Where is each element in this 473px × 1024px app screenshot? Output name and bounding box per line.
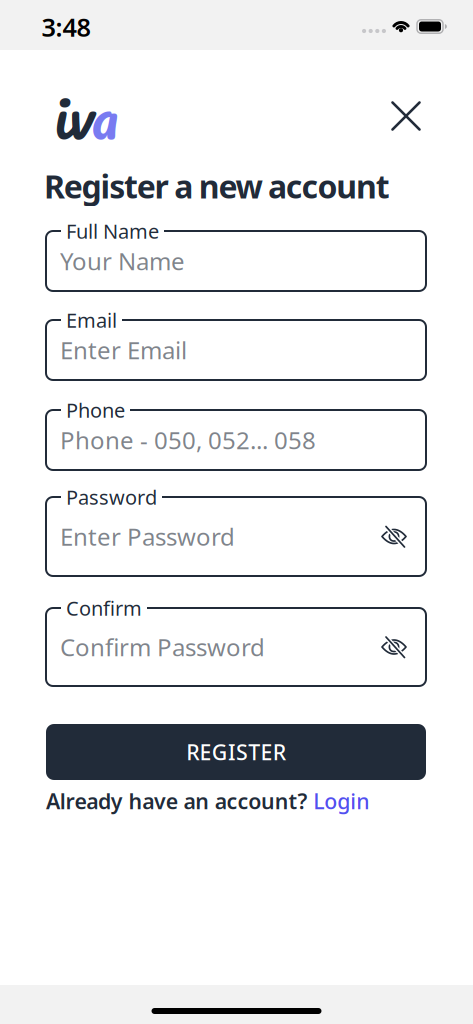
staticText: Confirm (66, 595, 142, 621)
staticText: Already have an account? (46, 787, 313, 815)
staticText: Register a new account (44, 165, 390, 207)
staticText: Full Name (66, 218, 159, 244)
button[interactable]: Login (313, 787, 369, 815)
staticText: REGISTER (186, 738, 286, 766)
staticText: Password (66, 484, 157, 510)
staticText: Enter Password (60, 521, 235, 552)
staticText: Enter Email (60, 334, 187, 366)
staticText: Phone - 050, 052... 058 (60, 424, 316, 456)
button[interactable] (381, 637, 407, 657)
staticText: a (91, 61, 118, 167)
button[interactable]: REGISTER (46, 724, 426, 780)
staticText: Phone (66, 397, 125, 423)
staticText: Email (66, 307, 117, 333)
staticText: Your Name (60, 245, 185, 277)
button[interactable] (391, 101, 421, 131)
staticText: Login (313, 787, 369, 815)
staticText: Confirm Password (60, 631, 265, 663)
button[interactable] (381, 526, 407, 546)
staticText: iv (54, 61, 94, 167)
staticText: 3:48 (41, 10, 90, 44)
